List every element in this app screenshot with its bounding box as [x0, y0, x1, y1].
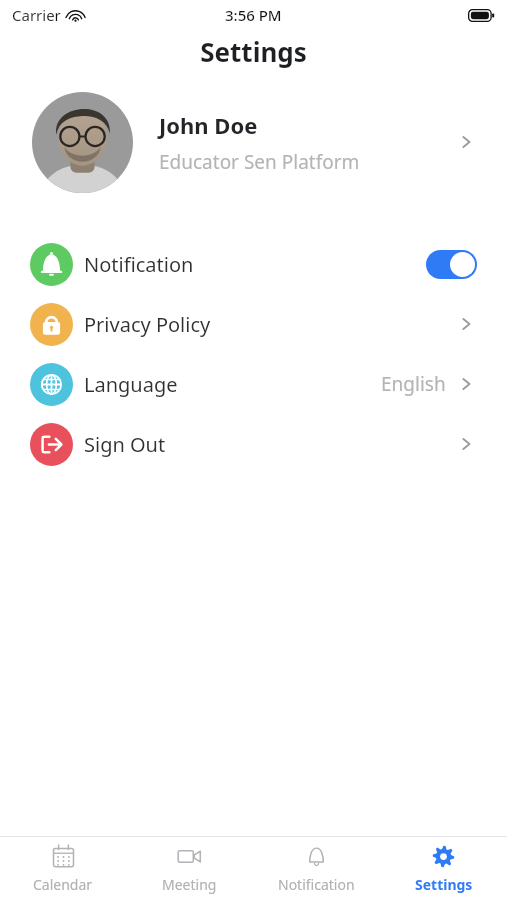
- staticText: Calendar: [33, 875, 93, 894]
- staticText: John Doe: [159, 110, 258, 140]
- button[interactable]: Sign Out: [0, 414, 507, 474]
- button[interactable]: John Doe: [0, 86, 507, 198]
- staticText: Settings: [415, 875, 473, 894]
- staticText: 3:56 PM: [225, 5, 282, 25]
- staticText: Carrier: [12, 5, 61, 25]
- staticText: Meeting: [162, 875, 217, 894]
- staticText: Settings: [200, 34, 307, 69]
- button[interactable]: Language: [0, 354, 507, 414]
- staticText: Language: [84, 371, 381, 398]
- button[interactable]: Meeting: [126, 837, 253, 900]
- staticText: Notification: [84, 251, 426, 278]
- button[interactable]: Privacy Policy: [0, 294, 507, 354]
- staticText: English: [381, 371, 446, 397]
- staticText: Notification: [278, 875, 355, 894]
- staticText: Educator Sen Platform: [159, 149, 360, 175]
- button[interactable]: Notification: [0, 234, 507, 294]
- staticText: Privacy Policy: [84, 311, 455, 338]
- button[interactable]: Calendar: [0, 837, 126, 900]
- button[interactable]: Settings: [380, 837, 507, 900]
- staticText: Sign Out: [84, 431, 455, 458]
- button[interactable]: Notification toggle: [426, 250, 477, 279]
- button[interactable]: Notification: [253, 837, 380, 900]
